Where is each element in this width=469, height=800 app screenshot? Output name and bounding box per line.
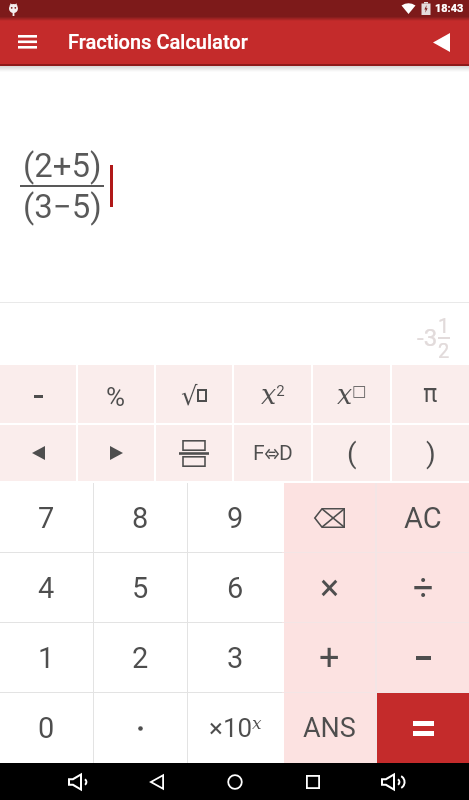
button[interactable] bbox=[39, 763, 118, 800]
staticText: (3−5) bbox=[23, 187, 102, 226]
button[interactable] bbox=[196, 763, 274, 800]
button[interactable]: 5 bbox=[94, 553, 187, 622]
button[interactable]: 2 bbox=[94, 623, 187, 692]
button[interactable] bbox=[274, 763, 352, 800]
button[interactable]: 0 bbox=[0, 693, 93, 763]
button[interactable] bbox=[78, 425, 154, 481]
staticText: √ bbox=[181, 381, 198, 411]
button[interactable] bbox=[377, 623, 469, 692]
staticText: 2 bbox=[132, 641, 149, 675]
button[interactable]: x□ bbox=[313, 365, 390, 423]
button[interactable] bbox=[10, 25, 44, 59]
button[interactable] bbox=[0, 365, 76, 423]
button[interactable]: ) bbox=[392, 425, 469, 481]
button[interactable]: π bbox=[392, 365, 469, 423]
staticText: x2 bbox=[261, 379, 285, 410]
staticText: ANS bbox=[303, 712, 356, 744]
button[interactable]: 9 bbox=[188, 483, 282, 552]
button[interactable] bbox=[156, 425, 232, 481]
button[interactable]: % bbox=[78, 365, 154, 423]
staticText: 3 bbox=[227, 641, 244, 675]
staticText: ) bbox=[426, 437, 436, 470]
staticText: -3 bbox=[417, 324, 438, 352]
button[interactable]: × bbox=[284, 553, 375, 622]
staticText: 2 bbox=[438, 339, 450, 362]
staticText: ( bbox=[347, 437, 357, 470]
button[interactable]: AC bbox=[377, 483, 469, 552]
staticText: 1 bbox=[438, 314, 450, 337]
button[interactable]: 1 bbox=[0, 623, 93, 692]
staticText: 7 bbox=[38, 501, 55, 535]
staticText: Fractions Calculator bbox=[68, 30, 248, 53]
button[interactable]: x2 bbox=[234, 365, 311, 423]
staticText: ÷ bbox=[413, 567, 434, 609]
button[interactable]: 6 bbox=[188, 553, 282, 622]
staticText: π bbox=[423, 380, 438, 408]
staticText: ×10x bbox=[209, 713, 262, 744]
staticText: D bbox=[279, 441, 293, 466]
button[interactable] bbox=[284, 483, 375, 552]
button[interactable]: 8 bbox=[94, 483, 187, 552]
staticText: 9 bbox=[227, 501, 244, 535]
staticText: + bbox=[319, 637, 340, 679]
button[interactable]: ÷ bbox=[377, 553, 469, 622]
staticText: F bbox=[253, 441, 265, 466]
staticText: (2+5) bbox=[23, 146, 102, 185]
staticText: 6 bbox=[227, 571, 244, 605]
button[interactable]: ×10x bbox=[188, 693, 282, 763]
button[interactable]: 4 bbox=[0, 553, 93, 622]
button[interactable] bbox=[377, 693, 469, 763]
staticText: % bbox=[106, 382, 126, 412]
staticText: 1 bbox=[38, 641, 55, 675]
staticText: × bbox=[320, 567, 340, 609]
staticText: 18:43 bbox=[435, 2, 464, 15]
button[interactable]: ( bbox=[313, 425, 390, 481]
staticText: AC bbox=[404, 501, 442, 535]
button[interactable]: F bbox=[234, 425, 311, 481]
staticText: 5 bbox=[132, 571, 149, 605]
button[interactable]: √ bbox=[156, 365, 232, 423]
button[interactable] bbox=[0, 425, 76, 481]
button[interactable] bbox=[94, 693, 187, 763]
staticText: x□ bbox=[337, 379, 367, 410]
button[interactable] bbox=[352, 763, 430, 800]
staticText: 0 bbox=[38, 711, 55, 745]
button[interactable] bbox=[423, 24, 459, 60]
button[interactable]: + bbox=[284, 623, 375, 692]
button[interactable]: 7 bbox=[0, 483, 93, 552]
button[interactable] bbox=[118, 763, 196, 800]
staticText: 4 bbox=[38, 571, 55, 605]
staticText: 8 bbox=[132, 501, 149, 535]
button[interactable]: 3 bbox=[188, 623, 282, 692]
button[interactable]: ANS bbox=[284, 693, 375, 763]
